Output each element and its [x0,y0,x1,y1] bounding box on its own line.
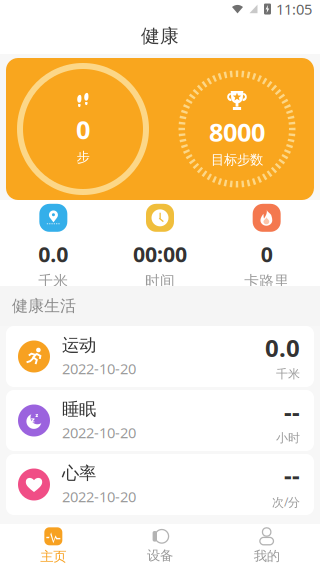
staticText: 心率 [62,463,96,484]
button[interactable]: 主页 [0,527,107,565]
staticText: 2022-10-20 [62,423,136,442]
staticText: 目标步数 [211,152,263,168]
staticText: 步 [76,149,89,165]
staticText: 11:05 [276,0,312,19]
staticText: 主页 [40,548,66,565]
button[interactable]: 00:00 [107,204,213,290]
staticText: 2022-10-20 [62,359,136,378]
button[interactable]: 我的 [213,528,320,564]
button[interactable]: 运动 [6,326,314,387]
staticText: 0.0 [265,332,300,364]
staticText: 0 [261,240,273,268]
staticText: 设备 [147,547,173,564]
staticText: 千米 [38,272,68,290]
staticText: -- [284,459,300,491]
staticText: -- [284,396,300,428]
button[interactable]: 0.0 [0,204,107,290]
staticText: 健康生活 [12,296,76,316]
staticText: 8000 [209,115,265,149]
button[interactable]: 0 [213,204,320,290]
staticText: 时间 [145,272,175,290]
staticText: 我的 [254,548,280,564]
staticText: 卡路里 [244,272,289,290]
staticText: 2022-10-20 [62,487,136,506]
staticText: 次/分 [272,494,300,510]
staticText: 0 [76,112,90,146]
button[interactable]: 心率 [6,454,314,515]
staticText: 健康 [141,24,179,47]
staticText: 0.0 [38,240,68,268]
staticText: 千米 [276,367,300,381]
staticText: 小时 [276,431,300,445]
button[interactable]: 设备 [107,528,213,564]
button[interactable]: 睡眠 [6,390,314,451]
staticText: 00:00 [133,240,187,268]
staticText: 睡眠 [62,399,96,420]
staticText: 运动 [62,335,96,356]
